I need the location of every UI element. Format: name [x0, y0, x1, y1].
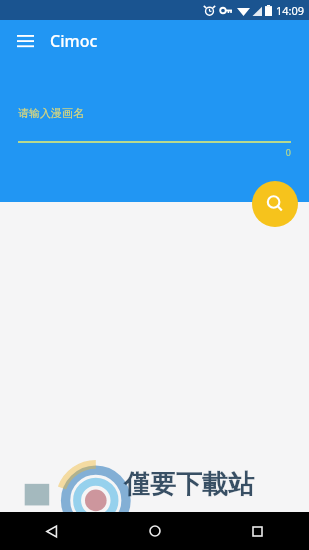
staticText: 僅要下載站 [124, 468, 254, 501]
button[interactable]: Recents [206, 512, 309, 550]
staticText: Cimoc [50, 30, 98, 52]
button[interactable]: Home [103, 512, 206, 550]
button[interactable]: Back [0, 512, 103, 550]
staticText: 0 [18, 146, 291, 158]
button[interactable]: Open navigation drawer [8, 24, 42, 58]
button[interactable]: Search [252, 181, 298, 227]
staticText: 请输入漫画名 [18, 106, 84, 120]
button[interactable]: 请输入漫画名 [18, 106, 291, 158]
staticText: 14:09 [276, 3, 305, 18]
staticText: www.ouyaoxiazai.com [72, 511, 262, 534]
